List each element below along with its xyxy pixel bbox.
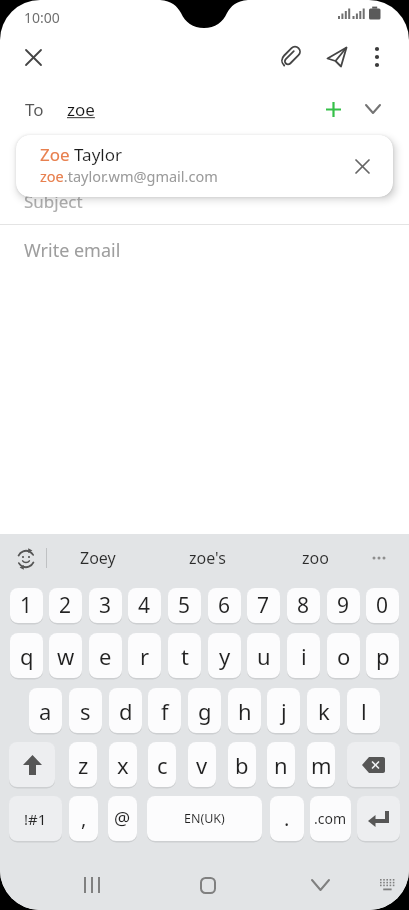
button[interactable]: Zoe Taylor — [16, 135, 393, 197]
button[interactable] — [358, 94, 388, 124]
button[interactable]: 0 — [366, 588, 399, 623]
button[interactable]: zoe's — [165, 534, 249, 582]
button[interactable]: t — [168, 633, 201, 678]
button[interactable]: k — [307, 688, 340, 733]
staticText: s — [80, 696, 91, 726]
button[interactable]: .com — [310, 796, 351, 841]
button[interactable]: . — [270, 796, 304, 841]
staticText: b — [235, 750, 249, 780]
staticText: 5 — [178, 591, 191, 620]
staticText: , — [81, 805, 87, 832]
staticText: j — [281, 696, 287, 726]
button[interactable]: 8 — [287, 588, 320, 623]
staticText: 7 — [257, 591, 270, 620]
button[interactable]: h — [228, 688, 261, 733]
button[interactable]: f — [148, 688, 181, 733]
button[interactable]: z — [69, 742, 97, 787]
staticText: y — [219, 641, 231, 671]
staticText: w — [57, 641, 75, 671]
button[interactable]: l — [347, 688, 380, 733]
button[interactable] — [273, 41, 305, 73]
button[interactable]: x — [109, 742, 137, 787]
button[interactable]: n — [267, 742, 295, 787]
button[interactable]: p — [366, 633, 399, 678]
staticText: z — [78, 750, 89, 780]
staticText: e — [99, 641, 112, 671]
button[interactable]: 2 — [49, 588, 82, 623]
staticText: r — [140, 641, 150, 671]
staticText: v — [196, 750, 208, 780]
staticText: i — [301, 641, 307, 671]
button[interactable]: Zoey — [56, 534, 140, 582]
staticText: t — [181, 641, 189, 671]
staticText: Zoe Taylor — [40, 143, 123, 166]
staticText: 6 — [218, 591, 231, 620]
button[interactable]: o — [327, 633, 360, 678]
button[interactable]: 4 — [128, 588, 161, 623]
button[interactable]: EN(UK) — [147, 796, 262, 841]
staticText: n — [274, 750, 288, 780]
staticText: 3 — [99, 591, 112, 620]
button[interactable] — [357, 796, 400, 841]
button[interactable]: 7 — [247, 588, 280, 623]
staticText: zoe's — [189, 547, 226, 569]
staticText: d — [119, 696, 133, 726]
button[interactable] — [302, 867, 338, 903]
button[interactable]: 5 — [168, 588, 201, 623]
button[interactable]: m — [307, 742, 335, 787]
staticText: c — [157, 750, 168, 780]
button[interactable]: @ — [108, 796, 137, 841]
staticText: h — [238, 696, 252, 726]
button[interactable]: b — [228, 742, 256, 787]
staticText: !#1 — [24, 809, 47, 829]
button[interactable]: d — [109, 688, 142, 733]
button[interactable]: j — [267, 688, 300, 733]
button[interactable]: w — [49, 633, 82, 678]
button[interactable] — [17, 41, 49, 73]
button[interactable]: v — [188, 742, 216, 787]
button[interactable]: a — [29, 688, 62, 733]
staticText: 0 — [376, 591, 389, 620]
button[interactable]: y — [208, 633, 241, 678]
staticText: 1 — [20, 591, 33, 620]
button[interactable] — [362, 534, 396, 582]
button[interactable] — [372, 870, 402, 900]
staticText: l — [361, 696, 367, 726]
button[interactable] — [318, 94, 348, 124]
staticText: @ — [114, 806, 131, 831]
staticText: zoe — [67, 98, 95, 121]
staticText: Subject — [24, 190, 83, 213]
button[interactable] — [361, 41, 393, 73]
button[interactable]: r — [128, 633, 161, 678]
button[interactable]: q — [10, 633, 43, 678]
button[interactable] — [347, 151, 377, 181]
button[interactable] — [9, 742, 55, 787]
button[interactable] — [11, 544, 41, 574]
button[interactable]: 9 — [327, 588, 360, 623]
staticText: zoo — [302, 547, 329, 569]
button[interactable]: i — [287, 633, 320, 678]
staticText: EN(UK) — [184, 810, 225, 827]
button[interactable]: 6 — [208, 588, 241, 623]
staticText: f — [161, 696, 169, 726]
button[interactable]: 1 — [10, 588, 43, 623]
button[interactable]: , — [69, 796, 98, 841]
button[interactable] — [347, 742, 400, 787]
button[interactable]: !#1 — [9, 796, 62, 841]
staticText: g — [198, 696, 212, 726]
staticText: Write email — [24, 238, 121, 263]
button[interactable]: u — [247, 633, 280, 678]
button[interactable]: s — [69, 688, 102, 733]
button[interactable]: zoo — [273, 534, 357, 582]
button[interactable] — [190, 867, 226, 903]
staticText: 10:00 — [24, 8, 60, 27]
button[interactable] — [75, 867, 111, 903]
staticText: 4 — [138, 591, 151, 620]
staticText: Zoey — [80, 547, 116, 569]
button[interactable] — [321, 41, 353, 73]
button[interactable]: g — [188, 688, 221, 733]
staticText: m — [311, 750, 332, 780]
button[interactable]: 3 — [89, 588, 122, 623]
button[interactable]: c — [148, 742, 176, 787]
button[interactable]: e — [89, 633, 122, 678]
